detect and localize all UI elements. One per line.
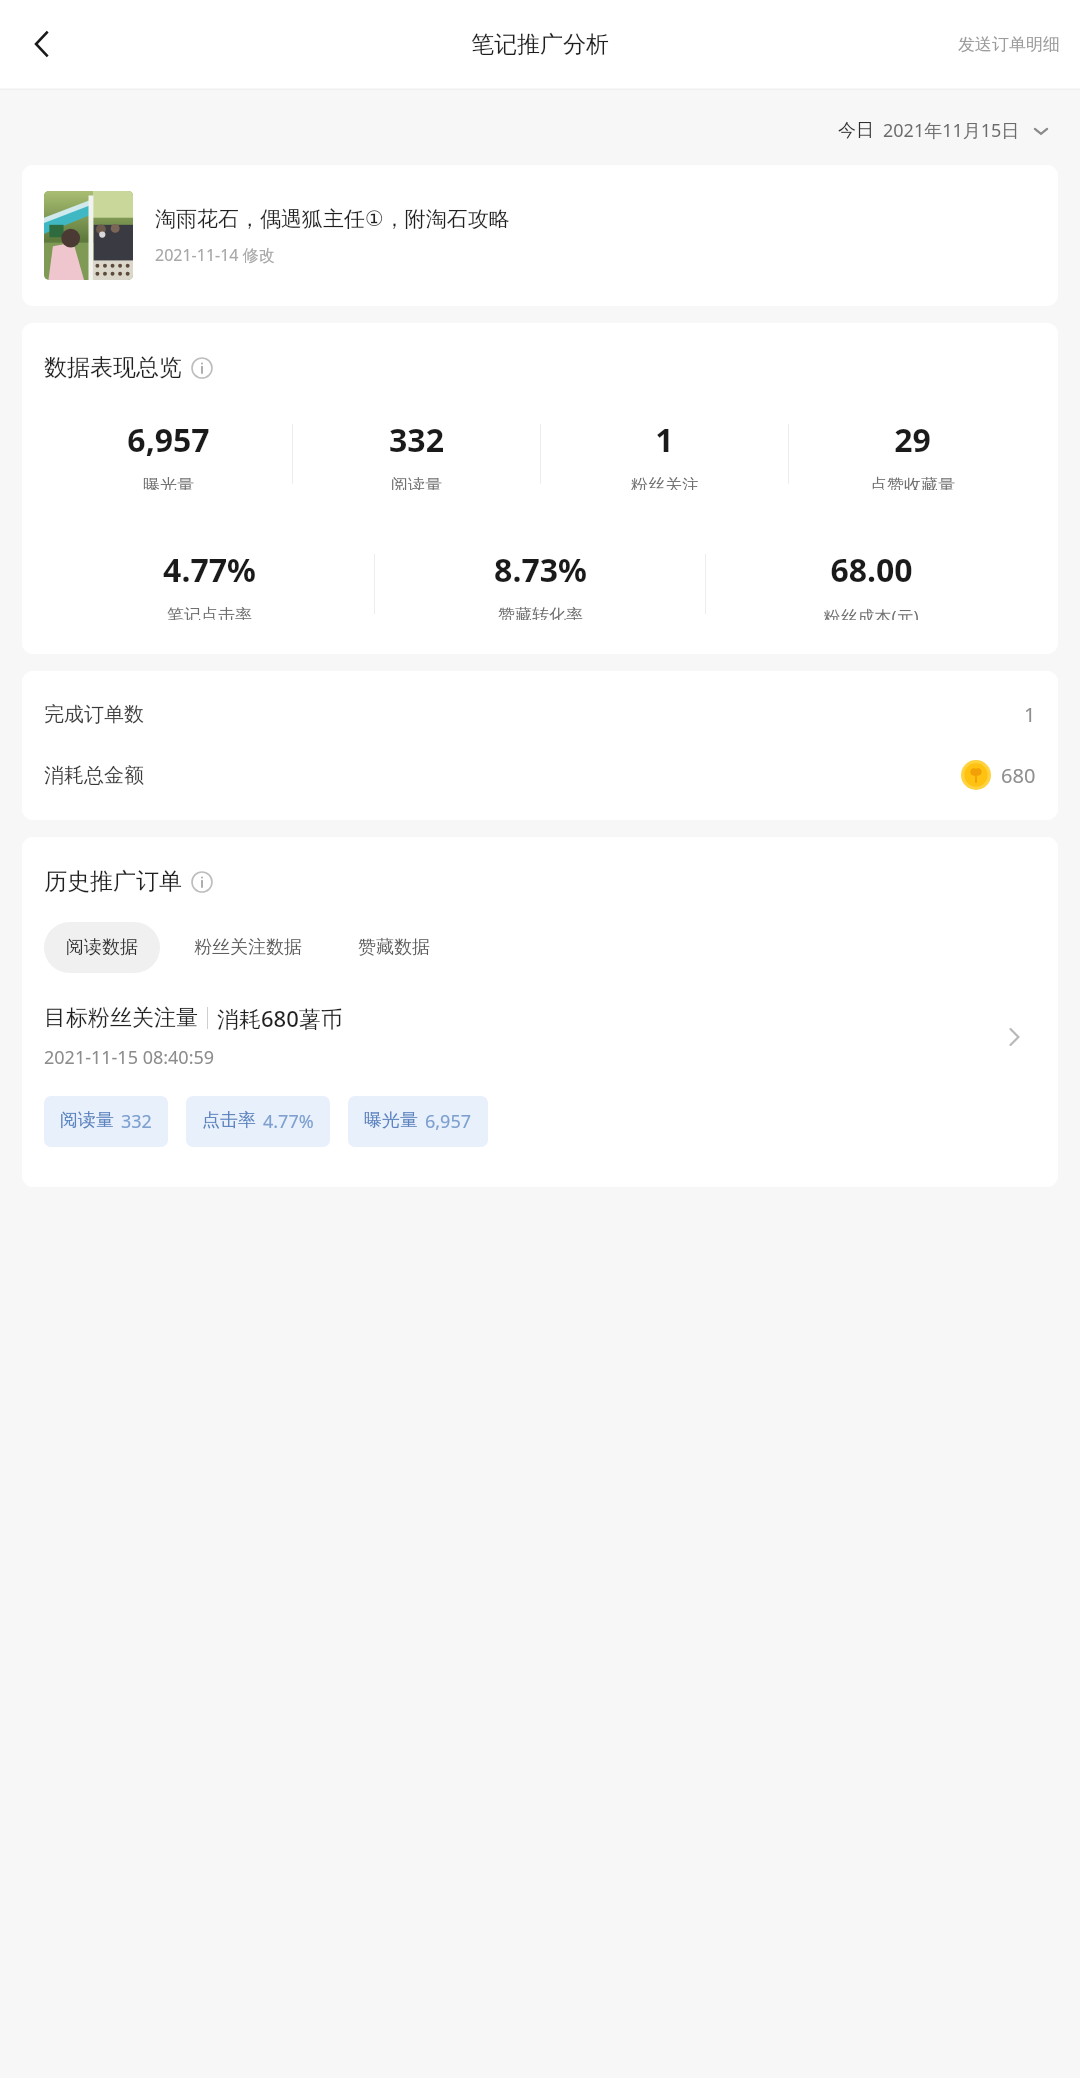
staticText: 6,957 xyxy=(425,1109,472,1134)
button[interactable]: 曝光量 xyxy=(348,1096,488,1147)
staticText: 2021-11-15 08:40:59 xyxy=(44,1045,215,1070)
staticText: 4.77% xyxy=(263,1109,314,1134)
button[interactable]: 淘雨花石，偶遇狐主任①，附淘石攻略 xyxy=(22,165,1058,306)
staticText: 粉丝关注 xyxy=(631,475,699,490)
staticText: 332 xyxy=(121,1109,152,1134)
staticText: 阅读量 xyxy=(60,1109,114,1132)
button[interactable]: 今日 xyxy=(832,112,1056,149)
button[interactable]: 粉丝关注数据 xyxy=(172,922,324,973)
staticText: 数据表现总览 xyxy=(44,353,182,382)
staticText: 点击率 xyxy=(202,1109,256,1132)
staticText: 赞藏数据 xyxy=(358,936,430,959)
staticText: 点赞收藏量 xyxy=(870,475,955,490)
staticText: 赞藏转化率 xyxy=(498,605,583,620)
button[interactable]: 说明 xyxy=(191,357,213,379)
staticText: 曝光量 xyxy=(143,475,194,490)
staticText: 今日 xyxy=(838,119,874,142)
button[interactable]: 阅读数据 xyxy=(44,922,160,973)
button[interactable]: 目标粉丝关注量 xyxy=(44,1003,1036,1070)
staticText: 消耗680薯币 xyxy=(217,1003,343,1033)
staticText: 4.77% xyxy=(163,548,256,592)
staticText: 发送订单明细 xyxy=(958,34,1060,55)
staticText: 68.00 xyxy=(830,548,913,592)
staticText: 29 xyxy=(894,418,931,462)
staticText: 笔记点击率 xyxy=(167,605,252,620)
button[interactable]: 发送订单明细 xyxy=(938,20,1080,69)
staticText: 680 xyxy=(1001,762,1036,789)
staticText: 完成订单数 xyxy=(44,702,144,727)
button[interactable]: Back xyxy=(10,12,74,76)
staticText: 1 xyxy=(1024,701,1036,728)
staticText: 6,957 xyxy=(127,418,210,462)
button[interactable]: 阅读量 xyxy=(44,1096,168,1147)
staticText: 阅读量 xyxy=(391,475,442,490)
button[interactable]: 说明 xyxy=(191,871,213,893)
staticText: 历史推广订单 xyxy=(44,867,182,896)
staticText: 粉丝关注数据 xyxy=(194,936,302,959)
staticText: 粉丝成本(元) xyxy=(823,605,919,620)
button[interactable]: 详情 xyxy=(992,1015,1036,1059)
staticText: 淘雨花石，偶遇狐主任①，附淘石攻略 xyxy=(155,206,510,232)
staticText: 笔记推广分析 xyxy=(471,30,609,59)
staticText: 曝光量 xyxy=(364,1109,418,1132)
button[interactable]: 点击率 xyxy=(186,1096,330,1147)
staticText: 1 xyxy=(655,418,674,462)
staticText: 2021年11月15日 xyxy=(883,118,1020,143)
staticText: 阅读数据 xyxy=(66,936,138,959)
staticText: 消耗总金额 xyxy=(44,763,144,788)
staticText: 2021-11-14 修改 xyxy=(155,244,275,266)
staticText: 8.73% xyxy=(494,548,587,592)
staticText: 目标粉丝关注量 xyxy=(44,1004,198,1032)
staticText: 332 xyxy=(389,418,444,462)
button[interactable]: 赞藏数据 xyxy=(336,922,452,973)
